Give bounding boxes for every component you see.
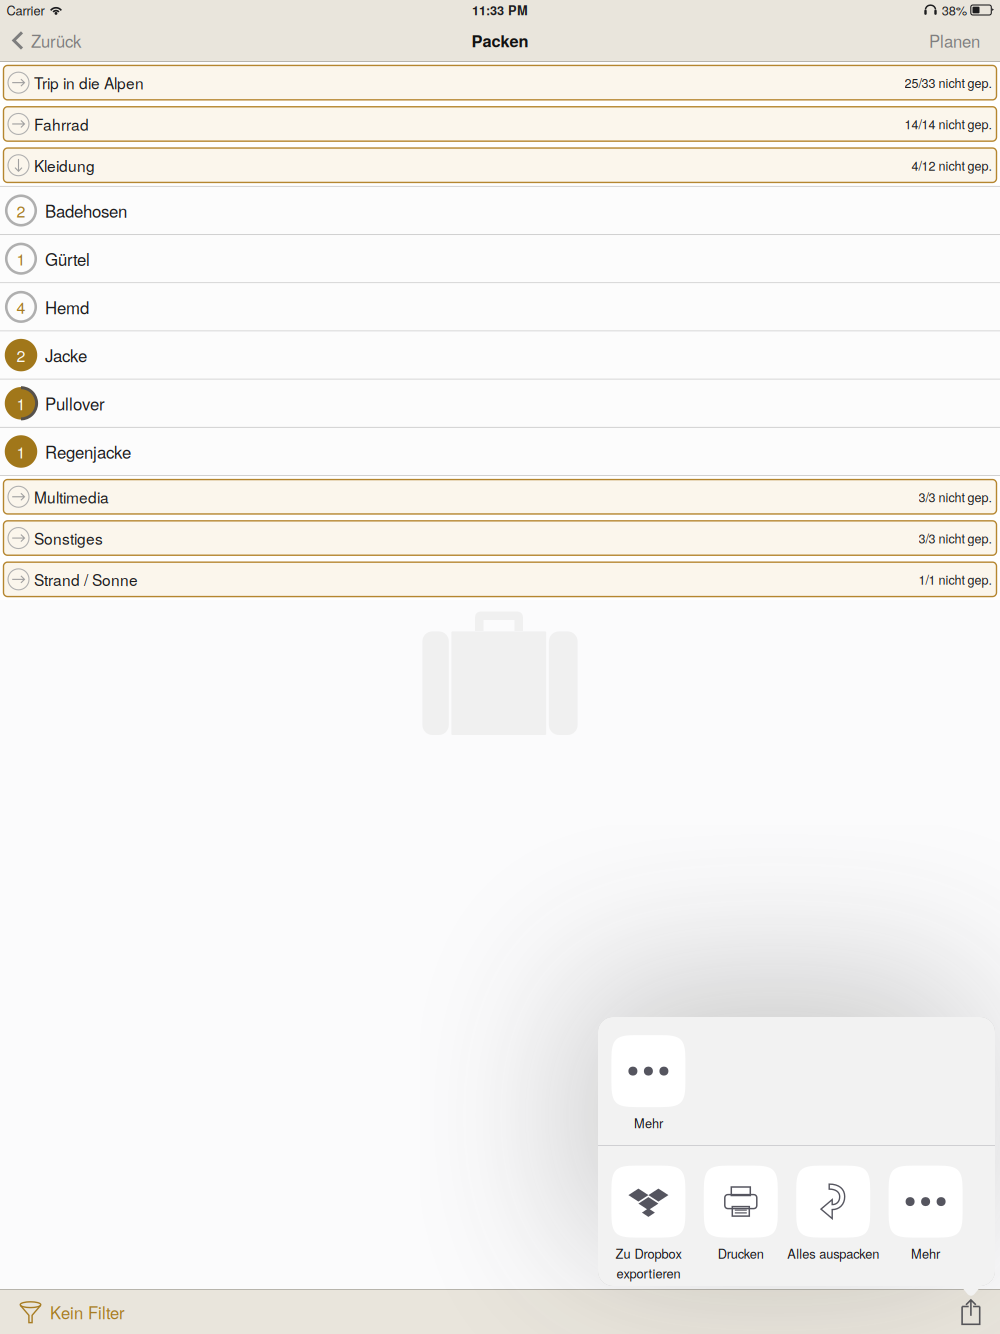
staticText: Kein Filter	[50, 1300, 125, 1324]
button[interactable]: 4	[0, 283, 1000, 331]
staticText: 11:33 PM	[472, 1, 528, 19]
staticText: Mehr	[911, 1244, 940, 1262]
staticText: Fahrrad	[34, 113, 89, 135]
staticText: Hemd	[45, 295, 89, 319]
staticText: Mehr	[634, 1114, 663, 1132]
button[interactable]: Kleidung	[0, 145, 1000, 186]
button[interactable]: Zu Dropbox	[602, 1166, 695, 1274]
staticText: Multimedia	[34, 486, 109, 508]
staticText: 1	[16, 440, 25, 463]
staticText: 2	[16, 344, 25, 366]
button[interactable]: Mehr	[602, 1035, 695, 1143]
button[interactable]: Mehr	[879, 1166, 972, 1274]
staticText: 4	[16, 295, 25, 318]
staticText: Gürtel	[45, 247, 90, 271]
staticText: Regenjacke	[45, 439, 131, 464]
button[interactable]: 1	[0, 235, 1000, 283]
staticText: Kleidung	[34, 154, 95, 176]
button[interactable]: Teilen	[945, 1290, 1000, 1334]
button[interactable]: 1	[0, 428, 1000, 476]
button[interactable]: Planen	[915, 20, 1000, 61]
button[interactable]: Zurück	[0, 20, 91, 61]
staticText: Packen	[471, 29, 528, 52]
staticText: Zurück	[31, 29, 81, 52]
staticText: 3/3 nicht gep.	[918, 529, 991, 547]
button[interactable]: Sonstiges	[0, 517, 1000, 559]
button[interactable]: Strand / Sonne	[0, 559, 1000, 600]
staticText: Jacke	[45, 343, 87, 367]
staticText: 38%	[942, 1, 967, 19]
staticText: exportieren	[616, 1264, 680, 1282]
button[interactable]: Alles auspacken	[787, 1166, 879, 1274]
staticText: 25/33 nicht gep.	[904, 74, 991, 92]
staticText: 2	[16, 199, 25, 222]
staticText: Drucken	[718, 1244, 764, 1262]
staticText: Sonstiges	[34, 527, 103, 549]
button[interactable]: Trip in die Alpen	[0, 62, 1000, 103]
staticText: Planen	[929, 29, 980, 52]
staticText: 1/1 nicht gep.	[918, 570, 991, 588]
button[interactable]: 2	[0, 331, 1000, 380]
staticText: Pullover	[45, 391, 105, 415]
staticText: 1	[16, 247, 25, 270]
button[interactable]: 2	[0, 187, 1000, 235]
button[interactable]: Drucken	[695, 1166, 787, 1274]
staticText: Alles auspacken	[787, 1244, 879, 1262]
button[interactable]: Kein Filter	[0, 1290, 139, 1334]
staticText: Trip in die Alpen	[34, 72, 144, 94]
staticText: Carrier	[6, 1, 44, 19]
staticText: Zu Dropbox	[615, 1244, 681, 1262]
staticText: 4/12 nicht gep.	[911, 156, 991, 174]
staticText: Strand / Sonne	[34, 568, 138, 590]
staticText: 14/14 nicht gep.	[904, 115, 991, 133]
button[interactable]: Fahrrad	[0, 103, 1000, 145]
staticText: 1	[16, 392, 25, 415]
button[interactable]: Multimedia	[0, 476, 1000, 517]
staticText: Badehosen	[45, 198, 127, 223]
staticText: 3/3 nicht gep.	[918, 488, 991, 506]
button[interactable]: 1	[0, 380, 1000, 428]
